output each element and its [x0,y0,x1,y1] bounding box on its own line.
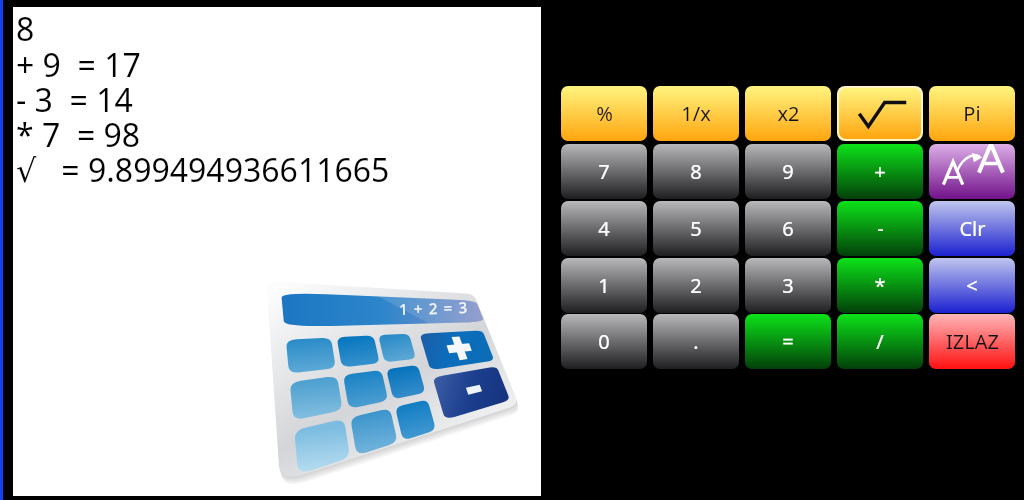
button[interactable]: Clr [929,201,1015,256]
button[interactable]: 7 [561,144,647,199]
button[interactable]: x2 [745,86,831,141]
button[interactable]: 0 [561,314,647,369]
staticText: 7 [598,158,610,185]
staticText: IZLAZ [946,328,999,355]
button[interactable]: * [837,258,923,313]
staticText: Clr [959,215,986,242]
staticText: 1/x [681,100,711,127]
staticText: 6 [782,215,794,242]
staticText: 8 [690,158,702,185]
button[interactable]: 2 [653,258,739,313]
button[interactable]: 1/x [653,86,739,141]
button[interactable]: + [837,144,923,199]
staticText: / [876,328,884,355]
staticText: 1 [598,272,610,299]
button[interactable]: IZLAZ [929,314,1015,369]
staticText: 2 [690,272,702,299]
button[interactable]: 1 [561,258,647,313]
staticText: 4 [598,215,610,242]
button[interactable]: 6 [745,201,831,256]
button[interactable]: 8 [653,144,739,199]
staticText: < [966,272,978,299]
staticText: 0 [598,328,610,355]
button[interactable]: 4 [561,201,647,256]
staticText: Pi [963,100,981,127]
staticText: 1 + 2 = 3 [399,297,469,319]
staticText: 3 [782,272,794,299]
staticText: % [596,100,613,127]
button[interactable]: Square root [839,88,921,139]
button[interactable]: 5 [653,201,739,256]
staticText: x2 [777,100,800,127]
button[interactable]: . [653,314,739,369]
button[interactable]: / [837,314,923,369]
button[interactable]: - [837,201,923,256]
staticText: * [874,272,886,299]
button[interactable]: < [929,258,1015,313]
staticText: . [693,328,699,355]
button[interactable]: 9 [745,144,831,199]
button[interactable]: = [745,314,831,369]
staticText: 5 [690,215,702,242]
button[interactable]: Pi [929,86,1015,141]
staticText: + [874,158,886,185]
button[interactable]: 3 [745,258,831,313]
staticText: - [877,215,884,242]
staticText: 9 [782,158,794,185]
staticText: = [782,328,794,355]
button[interactable]: % [561,86,647,141]
button[interactable]: Change font size [929,144,1015,199]
staticText: 8 + 9 = 17 - 3 = 14 * 7 = 98 √ = 9.89949… [16,7,390,192]
